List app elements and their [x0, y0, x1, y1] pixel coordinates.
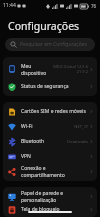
staticText: Bluetooth [21, 138, 45, 145]
staticText: Meu dispositivo [21, 63, 53, 76]
staticText: Status de segurança [21, 83, 69, 90]
other: Pesquisar [10, 41, 17, 48]
other: Meu dispositivo [8, 65, 16, 73]
staticText: Pesquisar em Configurações [20, 41, 87, 48]
button[interactable]: VPN [3, 149, 97, 164]
staticText: MIUI Global 12.5.6 21.9.2 [53, 64, 88, 74]
staticText: Tela de bloqueio [21, 206, 60, 213]
button[interactable]: Pesquisar [5, 38, 95, 51]
other: Conexão e compartilhamento [8, 168, 16, 176]
button[interactable]: Papel de parede e personalização [3, 189, 97, 204]
other: Wi-Fi [8, 123, 16, 131]
other: Bluetooth [8, 138, 16, 146]
button[interactable]: Status de segurança [3, 79, 97, 94]
staticText: VPN [21, 153, 31, 160]
button[interactable]: Conexão e compartilhamento [3, 164, 97, 179]
staticText: Cartões SIM e redes móveis [21, 108, 86, 115]
button[interactable]: Cartões SIM e redes móveis [3, 104, 97, 119]
staticText: NET_1F [74, 124, 88, 129]
staticText: Conexão e compartilhamento [21, 165, 90, 178]
staticText: Wi-Fi [21, 123, 33, 130]
other: Tela de bloqueio [8, 206, 16, 214]
button[interactable]: Meu dispositivo [3, 59, 97, 79]
staticText: Desativado [67, 139, 88, 144]
other: Status de segurança [8, 83, 16, 91]
button[interactable]: Tela de bloqueio [3, 204, 97, 215]
staticText: Papel de parede e personalização [21, 190, 90, 203]
staticText: Configurações [8, 19, 80, 33]
button[interactable]: Wi-Fi [3, 119, 97, 134]
button[interactable]: Bluetooth [3, 134, 97, 149]
staticText: 76 [91, 3, 97, 9]
other: VPN [8, 153, 16, 161]
other: Papel de parede e personalização [8, 193, 16, 201]
other: Cartões SIM e redes móveis [8, 108, 16, 116]
staticText: 11:44 [3, 2, 16, 9]
